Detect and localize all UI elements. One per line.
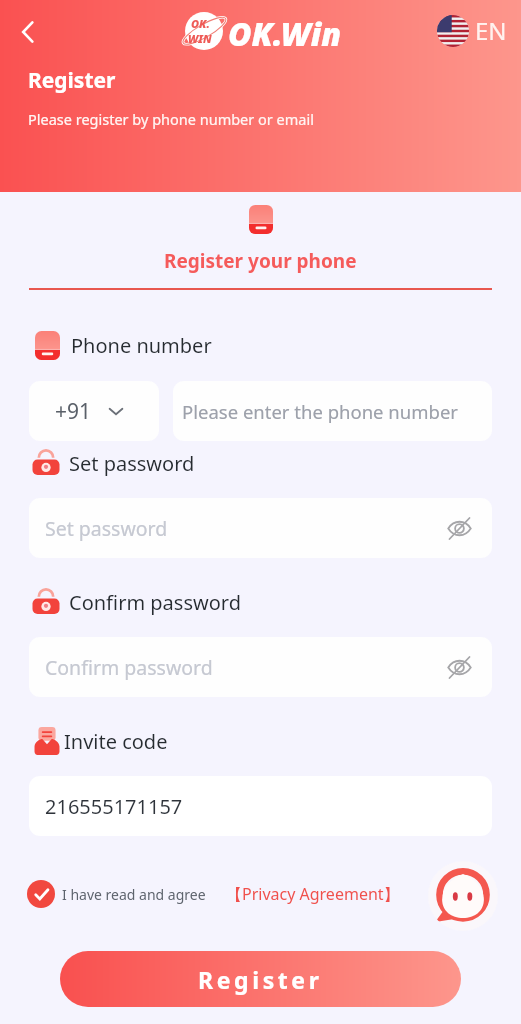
- staticText: OK.: [191, 16, 210, 31]
- staticText: I have read and agree: [62, 885, 206, 904]
- button[interactable]: Confirm password: [29, 637, 492, 697]
- button[interactable]: +91: [29, 381, 159, 441]
- staticText: Please enter the phone number: [182, 399, 458, 424]
- button[interactable]: [27, 880, 55, 908]
- staticText: EN: [475, 14, 507, 47]
- staticText: Confirm password: [69, 589, 241, 616]
- staticText: 216555171157: [45, 793, 183, 820]
- staticText: Set password: [45, 515, 168, 542]
- staticText: Confirm password: [45, 654, 213, 681]
- button[interactable]: 【Privacy Agreement】: [226, 883, 400, 905]
- staticText: Please register by phone number or email: [28, 109, 314, 129]
- staticText: Set password: [69, 450, 195, 477]
- button[interactable]: 216555171157: [29, 776, 492, 836]
- staticText: Register: [28, 66, 116, 95]
- button[interactable]: Please enter the phone number: [173, 381, 492, 441]
- staticText: Invite code: [64, 728, 168, 755]
- button[interactable]: Customer support chat: [428, 861, 498, 931]
- staticText: Phone number: [71, 332, 212, 359]
- button[interactable]: EN: [437, 14, 507, 47]
- button[interactable]: Back: [8, 12, 48, 52]
- staticText: WIN: [188, 31, 212, 46]
- button[interactable]: Register: [60, 951, 461, 1007]
- staticText: +91: [55, 397, 92, 426]
- staticText: Register your phone: [164, 248, 357, 274]
- staticText: Register: [198, 964, 323, 995]
- staticText: OK.Win: [228, 12, 342, 56]
- button[interactable]: Register your phone: [0, 205, 521, 274]
- button[interactable]: Show password: [442, 650, 476, 684]
- button[interactable]: Set password: [29, 498, 492, 558]
- button[interactable]: Show password: [442, 511, 476, 545]
